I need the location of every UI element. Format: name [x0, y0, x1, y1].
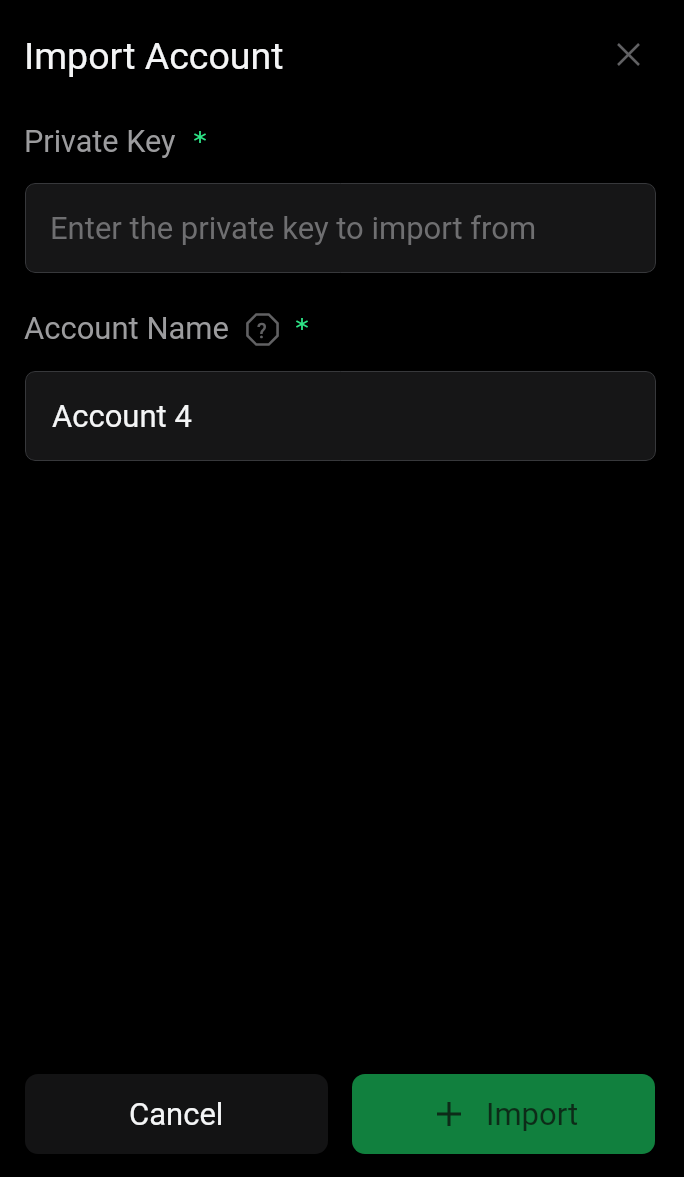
staticText: ? [257, 319, 267, 342]
button[interactable]: Enter the private key to import from [25, 183, 656, 273]
staticText: Account 4 [52, 398, 192, 434]
button[interactable]: Close [605, 31, 651, 77]
staticText: Enter the private key to import from [50, 210, 537, 246]
button[interactable]: Account 4 [25, 371, 656, 461]
button[interactable]: Import [352, 1074, 655, 1154]
button[interactable]: Cancel [25, 1074, 328, 1154]
button[interactable]: Help [245, 312, 279, 346]
staticText: Private Key [24, 124, 176, 160]
staticText: Account Name [24, 310, 229, 346]
staticText: Cancel [129, 1096, 224, 1132]
staticText: Import Account [24, 34, 284, 78]
staticText: Import [486, 1096, 579, 1132]
